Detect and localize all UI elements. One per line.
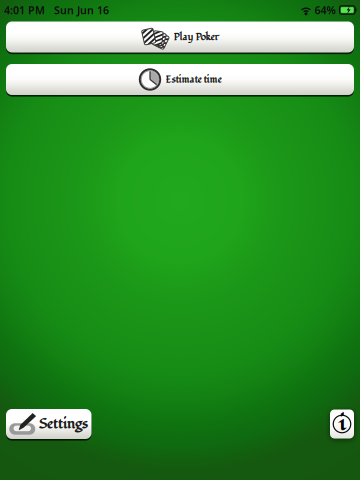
staticText: 4:01 PM: [4, 3, 45, 17]
button[interactable]: Settings: [6, 409, 91, 439]
staticText: Settings: [39, 414, 88, 434]
button[interactable]: Info: [330, 409, 354, 438]
staticText: Play Poker: [173, 30, 218, 44]
staticText: Estimate time: [165, 73, 221, 86]
staticText: 64%: [311, 3, 338, 17]
button[interactable]: Play Poker: [6, 21, 354, 52]
staticText: i: [339, 409, 345, 438]
staticText: Sun Jun 16: [45, 3, 109, 17]
button[interactable]: Estimate time: [6, 64, 354, 95]
